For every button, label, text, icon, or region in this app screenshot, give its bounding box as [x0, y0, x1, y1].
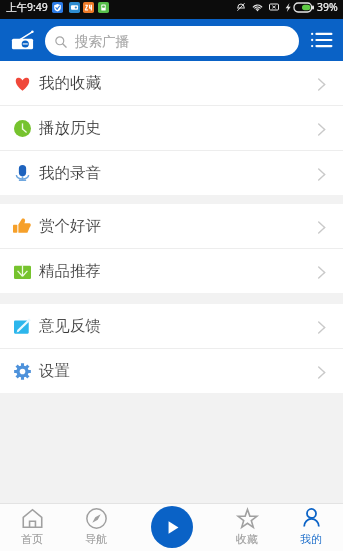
staticText: 赏个好评: [39, 216, 101, 236]
staticText: 首页: [21, 532, 43, 546]
staticText: 精品推荐: [39, 261, 101, 281]
button[interactable]: 精品推荐: [0, 249, 343, 293]
button[interactable]: 播放历史: [0, 106, 343, 150]
staticText: 意见反馈: [39, 316, 101, 336]
button[interactable]: 我的收藏: [0, 61, 343, 105]
button[interactable]: Radio: [0, 19, 44, 61]
button[interactable]: 我的录音: [0, 151, 343, 195]
staticText: 我的录音: [39, 163, 101, 183]
button[interactable]: 设置: [0, 349, 343, 393]
button[interactable]: 赏个好评: [0, 204, 343, 248]
button[interactable]: 导航: [64, 503, 128, 551]
staticText: 播放历史: [39, 118, 101, 138]
button[interactable]: 收藏: [215, 503, 279, 551]
staticText: 我的收藏: [39, 73, 101, 93]
button[interactable]: 我的: [279, 503, 343, 551]
button[interactable]: 搜索广播: [45, 26, 299, 56]
button[interactable]: Play: [151, 506, 193, 548]
staticText: 39%: [317, 0, 338, 14]
staticText: 设置: [39, 361, 70, 381]
staticText: 上午9:49: [6, 0, 48, 14]
staticText: 导航: [85, 532, 107, 546]
staticText: 搜索广播: [75, 33, 129, 50]
button[interactable]: Menu list: [299, 19, 343, 61]
staticText: 收藏: [236, 532, 258, 546]
button[interactable]: 首页: [0, 503, 64, 551]
staticText: 我的: [300, 532, 322, 546]
button[interactable]: 意见反馈: [0, 304, 343, 348]
